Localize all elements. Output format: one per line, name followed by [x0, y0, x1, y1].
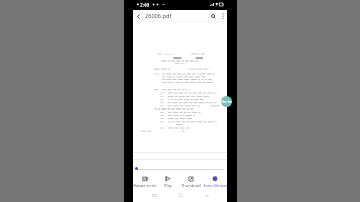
button[interactable]: Go to page [221, 96, 232, 107]
staticText: Enter Browse [203, 183, 227, 188]
button[interactable]: Play [156, 175, 179, 188]
button[interactable]: Search [208, 10, 218, 22]
button[interactable]: Back [201, 190, 211, 200]
staticText: Go to [221, 99, 232, 105]
staticText: 2:40 [140, 2, 150, 8]
button[interactable]: Enter Browse [203, 175, 227, 188]
button[interactable]: Page slider [135, 167, 138, 170]
staticText: 26006.pdf [145, 12, 172, 20]
staticText: Play [164, 183, 172, 188]
button[interactable]: More options [218, 10, 227, 22]
button[interactable]: Recents [149, 190, 159, 200]
staticText: Thumbnail [181, 183, 201, 188]
button[interactable]: Back [133, 10, 144, 22]
button[interactable]: Thumbnail [179, 175, 203, 188]
staticText: Rotate screen [133, 183, 156, 188]
button[interactable]: Home [175, 190, 185, 200]
button[interactable]: Rotate screen [133, 175, 156, 188]
